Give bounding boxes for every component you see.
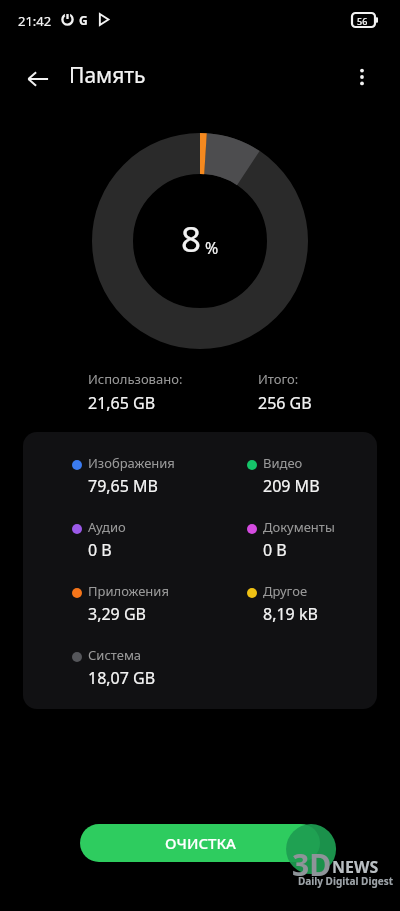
staticText: 209 MB bbox=[263, 475, 320, 497]
button[interactable]: Система bbox=[72, 646, 222, 702]
staticText: 56 bbox=[357, 15, 368, 27]
staticText: Итого: bbox=[258, 370, 299, 388]
staticText: 21:42 bbox=[18, 12, 52, 30]
staticText: Изображения bbox=[88, 454, 175, 472]
staticText: ОЧИСТКА bbox=[165, 833, 236, 853]
staticText: Система bbox=[88, 646, 142, 664]
staticText: Daily Digital Digest bbox=[298, 874, 394, 888]
button[interactable]: Другое bbox=[247, 582, 377, 638]
staticText: G bbox=[79, 12, 88, 28]
staticText: 3,29 GB bbox=[88, 603, 146, 625]
staticText: NEWS bbox=[332, 856, 379, 878]
staticText: % bbox=[205, 237, 219, 259]
staticText: 8,19 kB bbox=[263, 603, 318, 625]
staticText: 3D bbox=[292, 844, 332, 885]
staticText: 256 GB bbox=[258, 392, 312, 414]
button[interactable]: Изображения bbox=[72, 454, 222, 510]
button[interactable]: ОЧИСТКА bbox=[80, 824, 320, 862]
staticText: Аудио bbox=[88, 518, 126, 536]
button[interactable]: Видео bbox=[247, 454, 377, 510]
staticText: Память bbox=[69, 61, 146, 90]
staticText: Документы bbox=[263, 518, 335, 536]
button[interactable]: Приложения bbox=[72, 582, 222, 638]
staticText: 0 B bbox=[263, 539, 287, 561]
button[interactable]: Документы bbox=[247, 518, 377, 574]
staticText: 79,65 MB bbox=[88, 475, 158, 497]
staticText: 21,65 GB bbox=[88, 392, 156, 414]
staticText: Приложения bbox=[88, 582, 169, 600]
staticText: Видео bbox=[263, 454, 303, 472]
staticText: 18,07 GB bbox=[88, 667, 156, 689]
button[interactable]: More options bbox=[342, 57, 382, 97]
button[interactable]: Аудио bbox=[72, 518, 222, 574]
staticText: Другое bbox=[263, 582, 308, 600]
staticText: 0 B bbox=[88, 539, 112, 561]
button[interactable]: Back bbox=[16, 57, 60, 101]
staticText: 8 bbox=[181, 215, 202, 263]
staticText: Использовано: bbox=[88, 370, 183, 388]
